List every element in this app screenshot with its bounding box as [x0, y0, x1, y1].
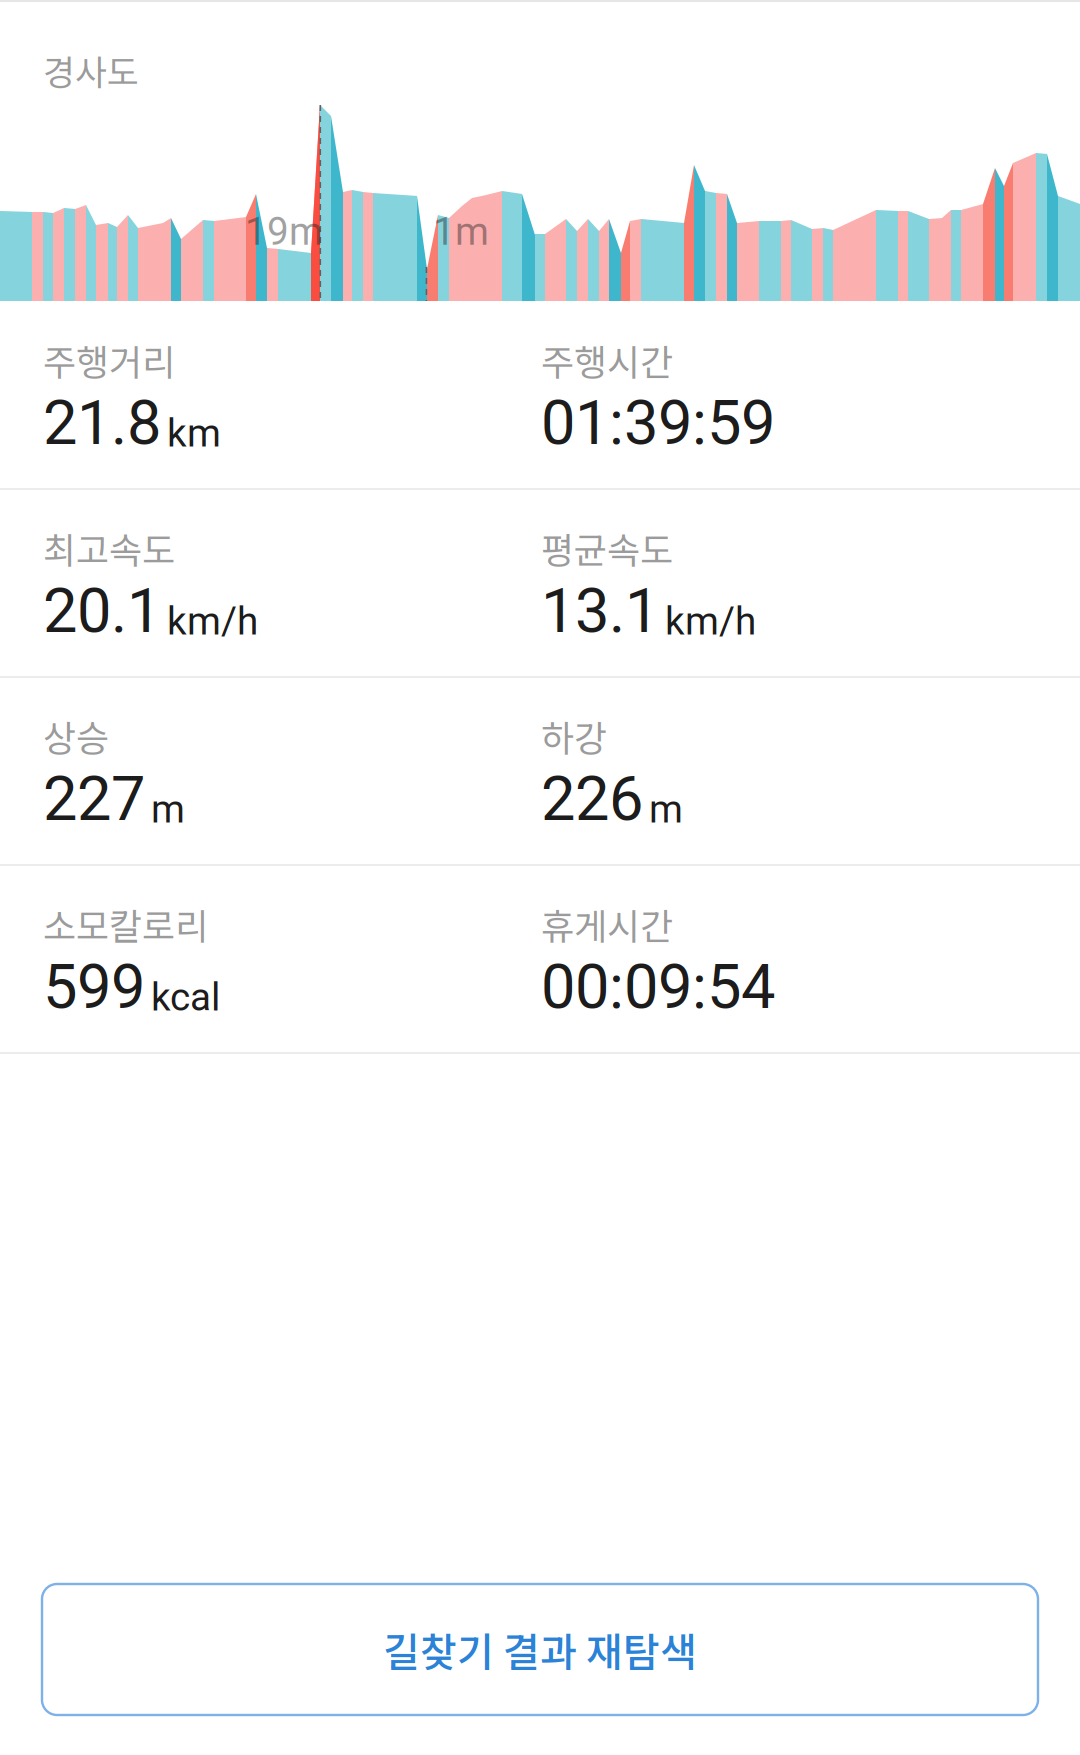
staticText: km/h [167, 599, 258, 644]
staticText: 227 [43, 763, 145, 835]
staticText: 599 [43, 951, 145, 1023]
staticText: 19m [245, 209, 323, 254]
staticText: 평균속도 [541, 522, 673, 574]
staticText: 01:39:59 [541, 387, 775, 459]
staticText: 길찾기 결과 재탐색 [383, 1620, 697, 1678]
staticText: 주행거리 [43, 334, 175, 386]
staticText: 소모칼로리 [43, 898, 208, 950]
staticText: km/h [665, 599, 756, 644]
staticText: 주행시간 [541, 334, 673, 386]
button[interactable]: 길찾기 결과 재탐색 [0, 1584, 1080, 1755]
staticText: 226 [541, 763, 643, 835]
staticText: 하강 [541, 710, 607, 762]
staticText: km [167, 411, 221, 456]
staticText: 최고속도 [43, 522, 175, 574]
staticText: kcal [151, 975, 220, 1020]
staticText: 상승 [43, 710, 109, 762]
staticText: 경사도 [43, 45, 139, 95]
staticText: 휴게시간 [541, 898, 673, 950]
staticText: 1m [433, 209, 489, 254]
staticText: 00:09:54 [541, 951, 775, 1023]
staticText: 13.1 [541, 575, 659, 647]
staticText: m [151, 787, 185, 832]
staticText: m [649, 787, 683, 832]
staticText: 20.1 [43, 575, 161, 647]
staticText: 21.8 [43, 387, 161, 459]
